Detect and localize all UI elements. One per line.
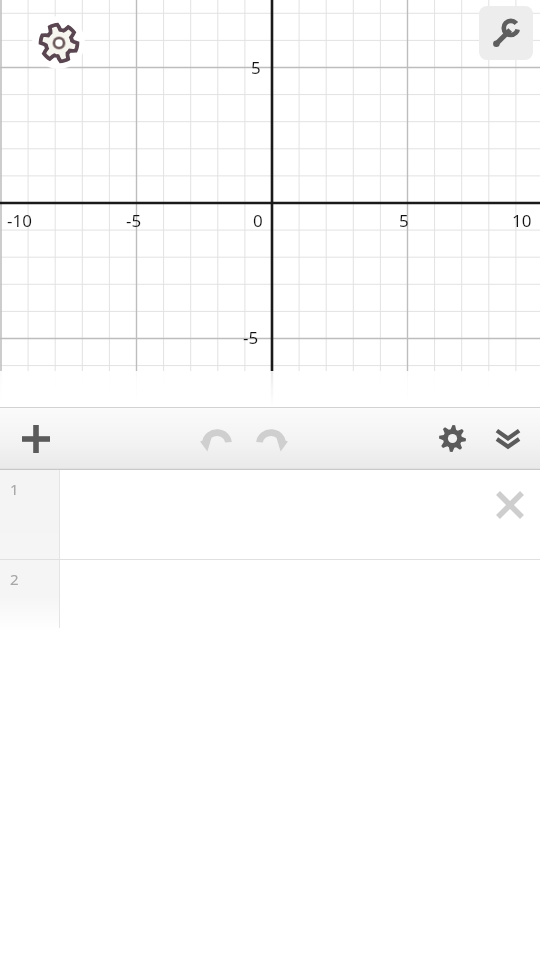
staticText: 10 (512, 209, 532, 232)
staticText: 5 (399, 209, 409, 232)
staticText: -5 (243, 326, 259, 349)
button[interactable]: 1 (0, 470, 540, 559)
staticText: -10 (7, 209, 32, 232)
button[interactable]: Tools (479, 6, 533, 60)
staticText: 0 (253, 209, 263, 232)
button[interactable]: Add expression (12, 415, 60, 463)
button[interactable]: Undo (195, 417, 239, 461)
button[interactable]: Graph settings (32, 16, 85, 69)
staticText: 5 (251, 56, 261, 79)
button[interactable]: Redo (249, 417, 293, 461)
button[interactable]: Settings (430, 416, 475, 461)
staticText: 2 (10, 569, 19, 589)
staticText: 1 (10, 479, 19, 499)
staticText: -5 (126, 209, 142, 232)
button[interactable]: Collapse keypad (485, 416, 530, 461)
button[interactable]: 2 (0, 560, 540, 630)
button[interactable]: Delete expression 1 (486, 481, 534, 529)
